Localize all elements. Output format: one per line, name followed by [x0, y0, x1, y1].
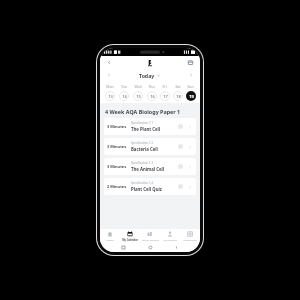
staticText: Mon: [106, 84, 114, 89]
button[interactable]: Mon: [103, 83, 117, 102]
button[interactable]: Community: [180, 229, 200, 243]
button[interactable]: 3 Minutes: [104, 158, 196, 175]
staticText: 19: [189, 94, 194, 99]
staticText: 14: [122, 94, 127, 99]
staticText: 17: [163, 94, 168, 99]
button[interactable]: Home: [100, 229, 120, 243]
staticText: Study Support: [142, 238, 159, 241]
button[interactable]: Sun: [184, 83, 197, 102]
staticText: My Calendar: [122, 238, 138, 241]
button[interactable]: 3 Minutes: [104, 138, 196, 155]
staticText: Specification 1.3: [131, 161, 154, 165]
button[interactable]: My Calendar: [120, 229, 140, 243]
button[interactable]: 2 Minutes: [104, 178, 196, 195]
button[interactable]: Mark complete: [176, 142, 185, 151]
button[interactable]: Mark complete: [176, 162, 185, 171]
button[interactable]: More options: [186, 143, 193, 150]
staticText: Home: [106, 238, 114, 241]
button[interactable]: More options: [186, 163, 193, 170]
staticText: 4 Week AQA Biology Paper 1: [105, 108, 181, 115]
button[interactable]: Back: [173, 244, 180, 251]
button[interactable]: Today: [137, 71, 162, 80]
staticText: 13: [108, 94, 113, 99]
button[interactable]: Study Support: [140, 229, 160, 243]
button[interactable]: Fri: [158, 83, 171, 102]
staticText: Bacteria Cell: [131, 146, 158, 152]
staticText: Tue: [121, 84, 127, 89]
staticText: 3 Minutes: [107, 124, 127, 129]
button[interactable]: Sat: [171, 83, 184, 102]
staticText: Sat: [175, 84, 181, 89]
staticText: 15: [136, 94, 141, 99]
staticText: Specification 1.4: [131, 181, 154, 185]
staticText: The Plant Cell: [131, 126, 161, 132]
staticText: My Account: [163, 238, 177, 241]
staticText: 3 Minutes: [107, 144, 127, 149]
button[interactable]: Tue: [117, 83, 131, 102]
button[interactable]: 3 Minutes: [104, 118, 196, 135]
button[interactable]: My Account: [160, 229, 180, 243]
staticText: Specification 1.2: [131, 141, 154, 145]
button[interactable]: Mark complete: [176, 122, 185, 131]
staticText: Community: [183, 238, 197, 241]
staticText: Sun: [187, 84, 194, 89]
staticText: 18: [176, 94, 181, 99]
button[interactable]: More options: [186, 183, 193, 190]
button[interactable]: Home: [147, 244, 154, 251]
staticText: Fri: [162, 84, 167, 89]
button[interactable]: More options: [186, 123, 193, 130]
staticText: Specification 1.1: [131, 121, 154, 125]
staticText: 2 Minutes: [107, 184, 127, 189]
button[interactable]: Wed: [131, 83, 145, 102]
staticText: Thu: [148, 84, 155, 89]
button[interactable]: Mark complete: [176, 182, 185, 191]
staticText: Today: [139, 72, 155, 79]
button[interactable]: Next week: [187, 71, 195, 79]
staticText: Plant Cell Quiz: [131, 186, 162, 192]
button[interactable]: Thu: [145, 83, 158, 102]
button[interactable]: Calendar: [186, 58, 195, 67]
button[interactable]: Previous week: [105, 71, 113, 79]
staticText: 3 Minutes: [107, 164, 127, 169]
staticText: 16: [150, 94, 155, 99]
button[interactable]: Back: [105, 58, 114, 67]
staticText: The Animal Cell: [131, 166, 165, 172]
staticText: Wed: [134, 84, 142, 89]
button[interactable]: Recents: [120, 244, 127, 251]
